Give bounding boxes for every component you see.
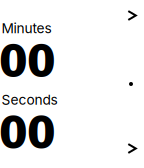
staticText: Minutes (1, 20, 51, 37)
staticText: Seconds (1, 91, 57, 108)
staticText: 00 (0, 103, 55, 160)
button[interactable]: Minutes (0, 0, 144, 84)
button[interactable]: Seconds (0, 84, 144, 168)
staticText: 00 (0, 31, 55, 88)
